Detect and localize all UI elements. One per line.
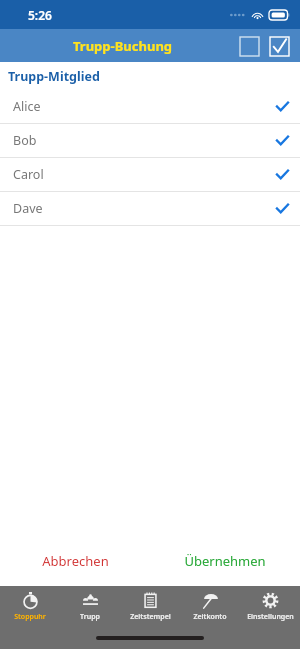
button[interactable]: Keine auswählen: [234, 31, 264, 61]
button[interactable]: Zeitstempel: [120, 586, 180, 626]
staticText: Dave: [13, 200, 43, 217]
staticText: Trupp-Buchung: [73, 37, 173, 55]
button[interactable]: Alice: [0, 90, 300, 124]
button[interactable]: Alle auswählen: [264, 31, 294, 61]
button[interactable]: Trupp: [60, 586, 120, 626]
staticText: Zeitstempel: [130, 612, 171, 622]
staticText: Stoppuhr: [14, 612, 46, 622]
button[interactable]: Zeitkonto: [180, 586, 240, 626]
staticText: Carol: [13, 166, 44, 183]
staticText: Abbrechen: [42, 552, 109, 570]
button[interactable]: Carol: [0, 158, 300, 192]
button[interactable]: Übernehmen: [150, 548, 300, 574]
staticText: 5:26: [28, 7, 52, 23]
staticText: Trupp: [80, 612, 100, 622]
button[interactable]: Bob: [0, 124, 300, 158]
button[interactable]: Einstellungen: [240, 586, 300, 626]
staticText: Trupp-Mitglied: [8, 68, 100, 85]
button[interactable]: Abbrechen: [0, 548, 150, 574]
button[interactable]: Stoppuhr: [0, 586, 60, 626]
staticText: Zeitkonto: [193, 612, 227, 622]
staticText: Einstellungen: [247, 612, 294, 622]
staticText: Alice: [13, 98, 41, 115]
staticText: Bob: [13, 132, 37, 149]
staticText: Übernehmen: [184, 552, 266, 570]
button[interactable]: Dave: [0, 192, 300, 226]
